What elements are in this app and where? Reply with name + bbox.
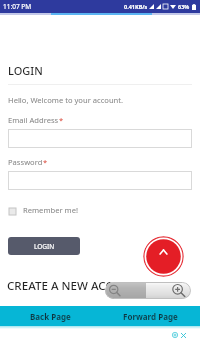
staticText: 63%: [178, 3, 190, 10]
button[interactable]: Scroll to top: [143, 236, 184, 277]
staticText: *: [59, 115, 64, 125]
button[interactable]: Zoom out: [108, 284, 121, 297]
button[interactable]: Ad choices: [172, 332, 178, 338]
staticText: *: [43, 157, 48, 167]
button[interactable]: [8, 129, 192, 148]
button[interactable]: CREATE A NEW ACCOUNT: [7, 278, 146, 294]
staticText: Password: [8, 157, 43, 167]
staticText: 0.41KB/s: [124, 3, 148, 10]
staticText: Hello, Welcome to your account.: [8, 95, 124, 105]
button[interactable]: [8, 171, 192, 190]
staticText: LOGIN: [34, 242, 55, 251]
button[interactable]: LOGIN: [8, 237, 80, 255]
staticText: Forward Page: [123, 311, 178, 322]
button[interactable]: Close ad: [181, 333, 186, 338]
button[interactable]: Forward Page: [100, 306, 200, 326]
button[interactable]: Zoom out: [105, 282, 146, 299]
button[interactable]: Remember me!: [8, 205, 78, 215]
staticText: Back Page: [30, 311, 71, 322]
button[interactable]: Zoom in: [171, 283, 186, 298]
button[interactable]: Back Page: [0, 306, 100, 326]
staticText: 11:07 PM: [3, 2, 32, 11]
staticText: LOGIN: [8, 63, 43, 78]
staticText: Remember me!: [23, 205, 78, 215]
staticText: Email Address: [8, 115, 59, 125]
